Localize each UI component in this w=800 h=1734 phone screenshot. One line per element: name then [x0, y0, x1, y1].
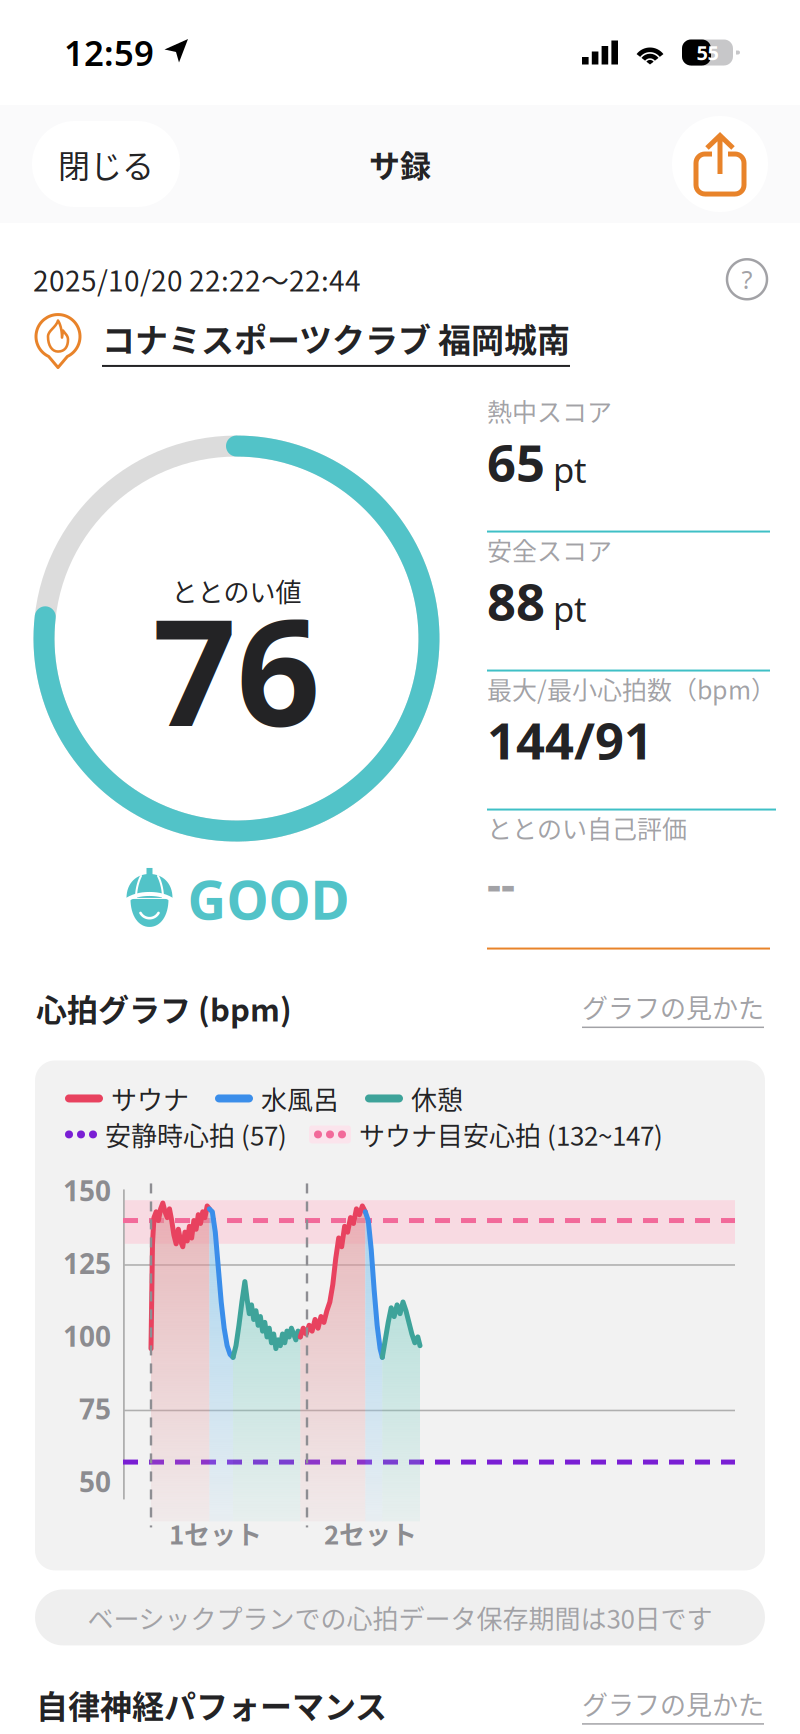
- staticText: サウナ: [111, 1080, 189, 1117]
- staticText: コナミスポーツクラブ 福岡城南: [102, 314, 570, 362]
- staticText: --: [487, 854, 515, 912]
- staticText: 熱中スコア: [487, 392, 612, 429]
- staticText: サ録: [369, 142, 431, 186]
- staticText: 125: [63, 1245, 111, 1282]
- staticText: ととのい自己評価: [487, 809, 687, 846]
- staticText: 水風呂: [261, 1080, 339, 1117]
- staticText: 休憩: [411, 1080, 463, 1117]
- button[interactable]: グラフの見かた: [582, 988, 764, 1028]
- staticText: ?: [741, 262, 752, 296]
- staticText: 150: [63, 1172, 111, 1209]
- staticText: 閉じる: [58, 141, 154, 187]
- staticText: 安全スコア: [487, 531, 612, 568]
- staticText: 76: [152, 572, 320, 767]
- staticText: 自律神経パフォーマンス: [36, 1681, 387, 1728]
- staticText: 100: [63, 1317, 111, 1354]
- button[interactable]: 閉じる: [32, 121, 180, 207]
- staticText: 最大/最小心拍数（bpm）: [487, 670, 776, 707]
- staticText: ベーシックプランでの心拍データ保存期間は30日です: [87, 1599, 712, 1636]
- staticText: 65: [487, 428, 545, 496]
- staticText: 55: [696, 39, 718, 66]
- staticText: グラフの見かた: [582, 1684, 764, 1722]
- staticText: 12:59: [64, 29, 154, 75]
- staticText: pt: [553, 585, 587, 631]
- staticText: 2セット: [324, 1514, 417, 1552]
- staticText: 144/91: [487, 706, 653, 774]
- staticText: pt: [553, 446, 587, 492]
- staticText: サウナ目安心拍 (132~147): [359, 1116, 663, 1153]
- button[interactable]: Share: [672, 116, 768, 212]
- button[interactable]: グラフの見かた: [582, 1684, 764, 1725]
- staticText: 88: [487, 567, 545, 635]
- staticText: GOOD: [187, 863, 349, 934]
- staticText: 心拍グラフ (bpm): [36, 985, 292, 1030]
- staticText: 50: [79, 1463, 111, 1500]
- button[interactable]: Help: [727, 259, 767, 299]
- staticText: 75: [79, 1390, 111, 1427]
- staticText: 2025/10/20 22:22〜22:44: [33, 259, 361, 299]
- staticText: グラフの見かた: [582, 988, 764, 1025]
- staticText: ととのい値: [171, 572, 301, 609]
- staticText: 安静時心拍 (57): [105, 1116, 287, 1153]
- staticText: 1セット: [169, 1514, 262, 1552]
